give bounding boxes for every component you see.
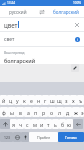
staticText: м xyxy=(33,121,37,128)
staticText: р xyxy=(42,109,46,116)
staticText: щ xyxy=(57,97,62,104)
button[interactable]: м xyxy=(31,119,38,129)
button[interactable]: г xyxy=(42,95,49,105)
staticText: я xyxy=(12,121,15,128)
staticText: и xyxy=(40,121,44,128)
button[interactable]: б xyxy=(59,119,66,129)
staticText: русский xyxy=(9,9,27,15)
button[interactable]: к xyxy=(21,95,28,105)
staticText: ш xyxy=(50,97,55,104)
staticText: в xyxy=(19,109,22,116)
staticText: х xyxy=(72,97,75,104)
staticText: ч xyxy=(19,121,23,128)
button[interactable]: Clear text xyxy=(71,19,83,31)
staticText: к xyxy=(23,97,26,104)
button[interactable]: ж xyxy=(72,107,80,117)
staticText: э xyxy=(81,109,84,116)
button[interactable]: э xyxy=(80,107,84,117)
staticText: л xyxy=(58,109,62,116)
button[interactable]: х xyxy=(70,95,77,105)
button[interactable]: ч xyxy=(17,119,24,129)
staticText: т xyxy=(47,121,50,128)
staticText: е xyxy=(30,97,33,104)
button[interactable]: ю xyxy=(66,119,73,129)
staticText: й xyxy=(2,97,6,104)
staticText: ь xyxy=(54,121,57,128)
button[interactable]: ш xyxy=(49,95,56,105)
staticText: б xyxy=(61,121,65,128)
button[interactable]: 123 xyxy=(0,132,13,142)
staticText: п xyxy=(34,109,38,116)
button[interactable]: Пробел xyxy=(29,132,58,142)
button[interactable]: Edit translation xyxy=(71,64,79,72)
button[interactable]: у xyxy=(14,95,21,105)
button[interactable]: свет xyxy=(0,32,84,46)
staticText: Готово xyxy=(65,135,77,140)
staticText: Ваш перевод xyxy=(4,51,25,55)
staticText: болгарский xyxy=(53,9,79,15)
staticText: ж xyxy=(74,109,78,116)
staticText: ц xyxy=(9,97,13,104)
staticText: д xyxy=(66,109,70,116)
button[interactable]: ф xyxy=(0,107,8,117)
button[interactable]: о xyxy=(48,107,56,117)
button[interactable]: л xyxy=(56,107,64,117)
button[interactable]: болгарский xyxy=(48,6,84,17)
button[interactable]: ы xyxy=(8,107,16,117)
staticText: г xyxy=(44,97,47,104)
staticText: ъ xyxy=(79,97,83,104)
button[interactable]: русский xyxy=(0,6,36,17)
button[interactable]: е xyxy=(28,95,35,105)
button[interactable]: п xyxy=(32,107,40,117)
staticText: 123 xyxy=(4,135,10,140)
button[interactable]: р xyxy=(40,107,48,117)
button[interactable]: Backspace xyxy=(73,119,83,129)
staticText: 100% xyxy=(73,1,82,5)
staticText: свет xyxy=(4,36,15,43)
staticText: i xyxy=(77,38,78,42)
button[interactable]: Voice input xyxy=(21,132,29,142)
staticText: цвет xyxy=(4,21,18,29)
button[interactable]: Change language xyxy=(13,132,21,142)
staticText: ю xyxy=(67,121,72,128)
staticText: а xyxy=(27,109,30,116)
staticText: о xyxy=(50,109,54,116)
button[interactable]: ъ xyxy=(77,95,84,105)
staticText: н xyxy=(37,97,41,104)
button[interactable]: з xyxy=(63,95,70,105)
button[interactable]: й xyxy=(0,95,7,105)
button[interactable]: д xyxy=(64,107,72,117)
button[interactable]: ц xyxy=(7,95,14,105)
staticText: ы xyxy=(10,109,14,116)
button[interactable]: Готово xyxy=(58,132,84,142)
staticText: у xyxy=(16,97,19,104)
button[interactable]: щ xyxy=(56,95,63,105)
button[interactable]: в xyxy=(16,107,24,117)
button[interactable]: и xyxy=(38,119,45,129)
staticText: болгарский xyxy=(4,57,36,64)
staticText: Пробел xyxy=(37,135,51,140)
staticText: ф xyxy=(2,109,6,116)
button[interactable]: с xyxy=(24,119,31,129)
staticText: с xyxy=(26,121,29,128)
button[interactable]: Swap languages xyxy=(36,6,48,17)
button[interactable]: я xyxy=(10,119,17,129)
staticText: з xyxy=(65,97,68,104)
button[interactable]: т xyxy=(45,119,52,129)
button[interactable]: н xyxy=(35,95,42,105)
button[interactable]: Shift xyxy=(0,119,10,129)
staticText: 13:24 xyxy=(7,1,16,5)
button[interactable]: а xyxy=(24,107,32,117)
button[interactable]: ь xyxy=(52,119,59,129)
